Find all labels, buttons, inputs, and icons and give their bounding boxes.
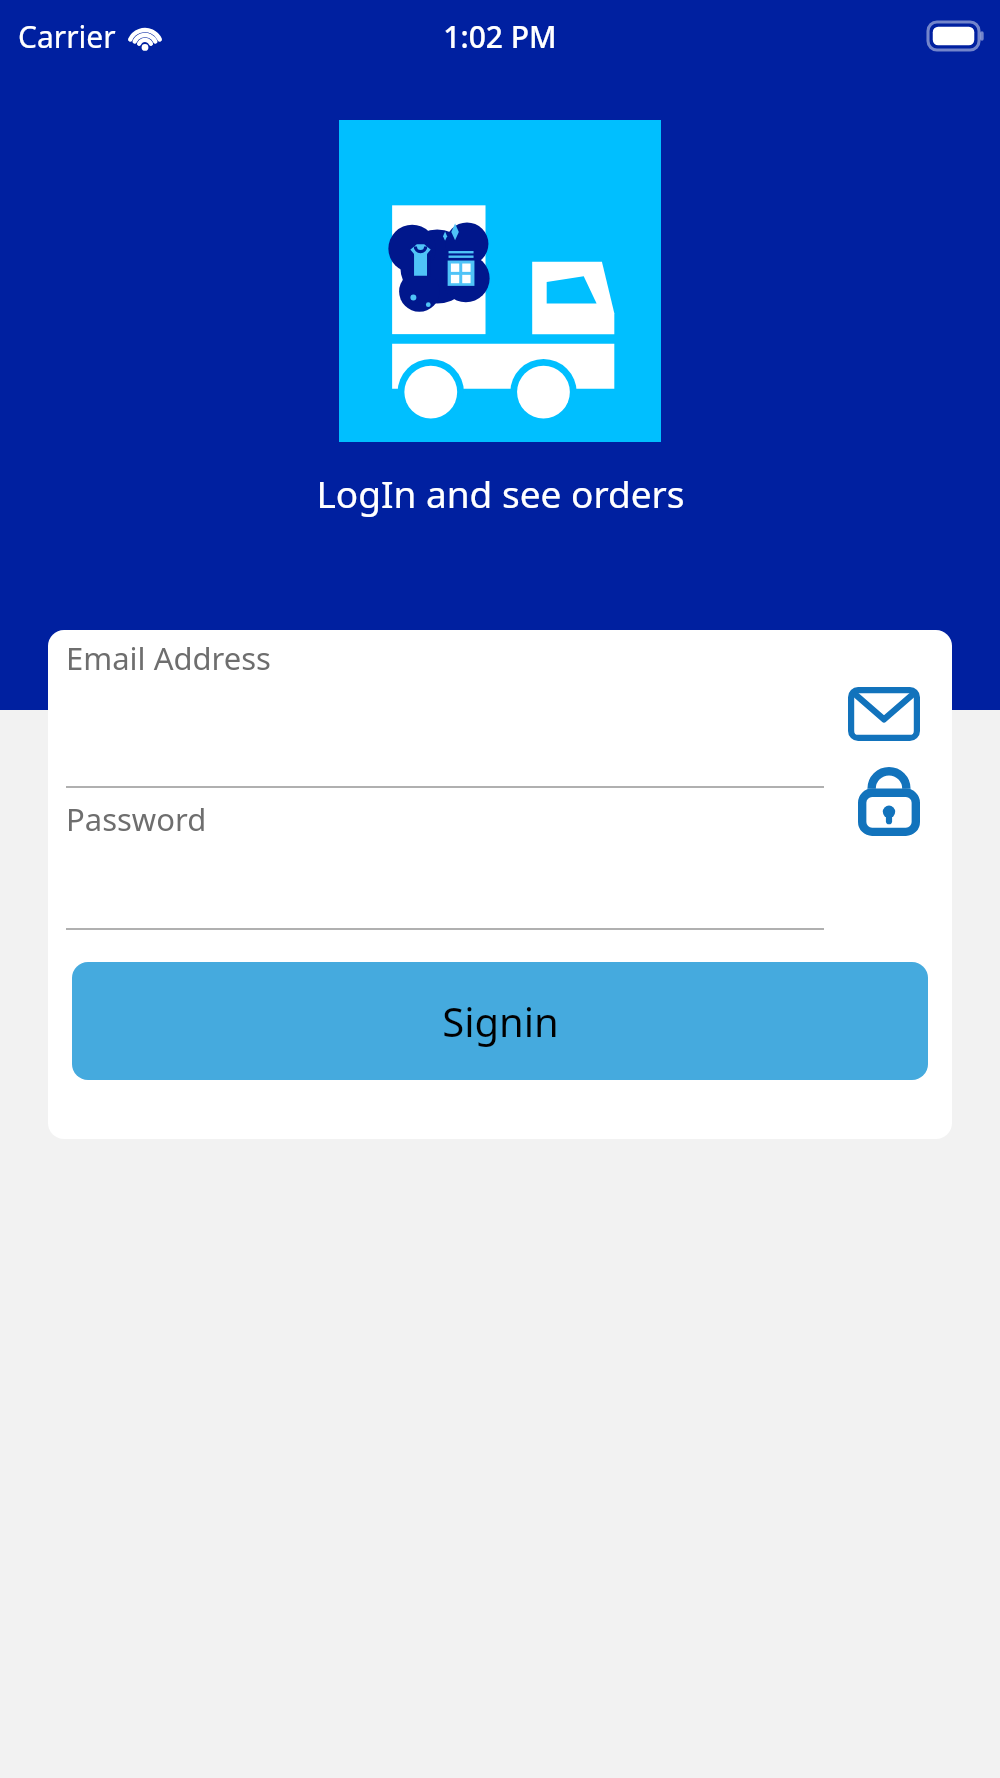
button[interactable]: Email Address (48, 630, 952, 788)
staticText: Signin (442, 994, 559, 1048)
button[interactable]: Signin (72, 962, 928, 1080)
other: Email (848, 687, 920, 741)
staticText: Email Address (66, 637, 271, 679)
staticText: Carrier (18, 16, 116, 57)
staticText: LogIn and see orders (316, 468, 685, 518)
other: Password (858, 764, 920, 836)
staticText: Password (66, 798, 207, 840)
staticText: 1:02 PM (443, 16, 557, 57)
button[interactable]: Password (48, 788, 952, 930)
